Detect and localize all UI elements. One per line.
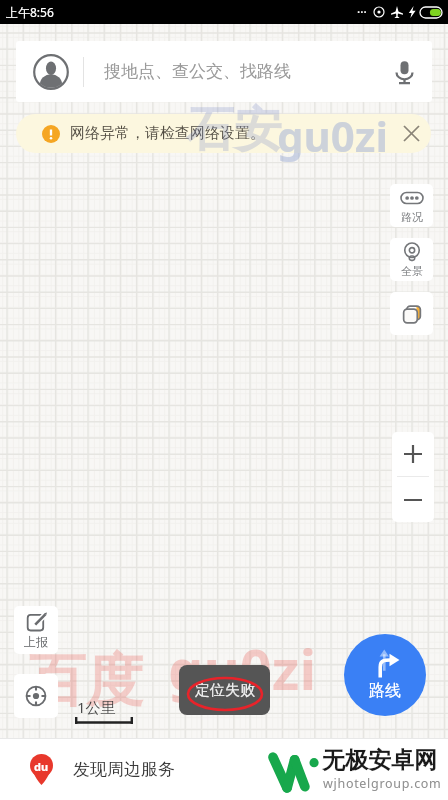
button[interactable]: Zoom out — [392, 477, 434, 522]
button[interactable]: 网络异常，请检查网络设置。 — [16, 114, 431, 153]
staticText: 上午8:56 — [6, 4, 54, 20]
button[interactable]: 路线 — [344, 634, 426, 716]
staticText: 全景 — [401, 264, 423, 278]
staticText: 百度 — [29, 645, 143, 717]
staticText: 上报 — [24, 634, 48, 649]
staticText: 路况 — [401, 210, 423, 224]
button[interactable]: du — [30, 753, 175, 785]
button[interactable]: 全景 — [390, 238, 433, 281]
button[interactable]: 上报 — [14, 606, 58, 654]
staticText: wjhotelgroup.com — [323, 775, 442, 792]
button[interactable]: Voice search — [376, 44, 432, 100]
staticText: 1公里 — [77, 697, 116, 717]
staticText: ··· — [357, 4, 367, 20]
staticText: du — [34, 759, 49, 774]
staticText: 发现周边服务 — [73, 759, 175, 780]
staticText: 网络异常，请检查网络设置。 — [70, 124, 265, 143]
staticText: 路线 — [369, 681, 401, 701]
staticText: 无极安卓网 — [322, 746, 437, 775]
button[interactable]: Map layers — [390, 292, 433, 335]
staticText: gu0zi — [168, 630, 317, 706]
button[interactable]: Zoom in — [392, 432, 434, 476]
staticText: 石安 — [186, 100, 282, 160]
button[interactable]: 路况 — [390, 184, 433, 227]
staticText: gu0zi — [277, 107, 389, 164]
button[interactable]: My location — [14, 674, 58, 718]
staticText: 定位失败 — [195, 681, 255, 700]
button[interactable]: Close — [392, 114, 431, 153]
staticText: 搜地点、查公交、找路线 — [104, 61, 291, 82]
button[interactable]: 搜地点、查公交、找路线 — [16, 41, 432, 102]
